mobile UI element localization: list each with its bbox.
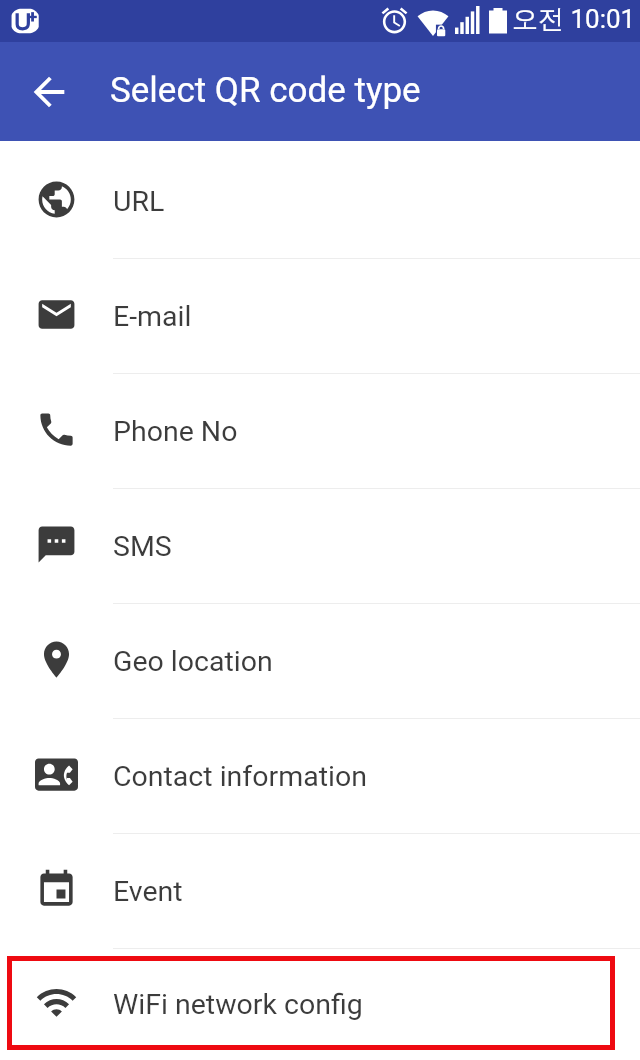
button[interactable]: Contact information — [0, 719, 640, 833]
button[interactable]: Phone No — [0, 374, 640, 488]
staticText: Phone No — [113, 415, 238, 448]
button[interactable]: E-mail — [0, 259, 640, 373]
staticText: E-mail — [113, 300, 192, 333]
button[interactable]: URL — [0, 144, 640, 258]
button[interactable]: Geo location — [0, 604, 640, 718]
staticText: Select QR code type — [110, 70, 421, 111]
button[interactable]: WiFi network config — [0, 949, 640, 1060]
staticText: Event — [113, 875, 183, 908]
staticText: URL — [113, 185, 165, 218]
button[interactable]: SMS — [0, 489, 640, 603]
staticText: WiFi network config — [113, 988, 363, 1021]
staticText: Contact information — [113, 760, 367, 793]
staticText: SMS — [113, 530, 172, 563]
staticText: 오전 10:01 — [512, 3, 636, 36]
button[interactable]: Event — [0, 834, 640, 948]
staticText: Geo location — [113, 645, 273, 678]
button[interactable]: Back — [21, 64, 77, 120]
